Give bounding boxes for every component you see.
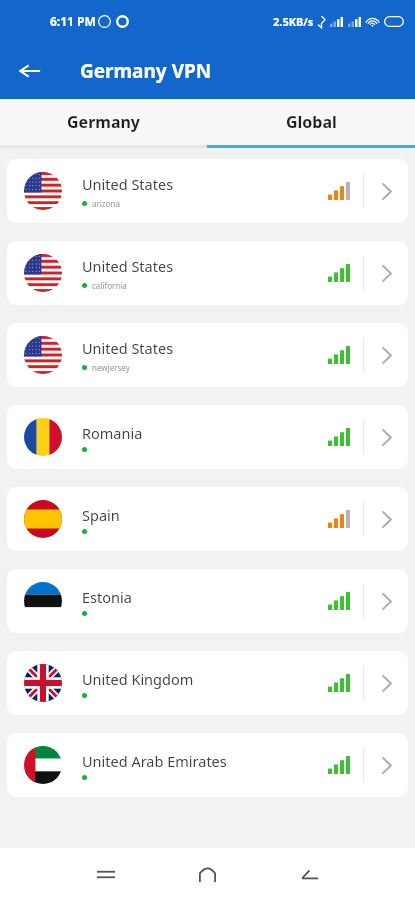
button[interactable]: Open United States xyxy=(364,241,408,305)
button[interactable]: Spain xyxy=(7,487,408,551)
button[interactable]: United States xyxy=(7,241,408,305)
staticText: newjersey xyxy=(92,362,130,373)
staticText: United States xyxy=(82,256,174,276)
staticText: United Kingdom xyxy=(82,669,194,689)
staticText: Spain xyxy=(82,505,120,525)
button[interactable]: Open Romania xyxy=(364,405,408,469)
staticText: 6:11 PM xyxy=(50,13,96,29)
staticText: 2.5KB/s xyxy=(273,14,314,29)
button[interactable]: Open United Kingdom xyxy=(364,651,408,715)
button[interactable]: Back xyxy=(258,848,360,900)
button[interactable]: Germany xyxy=(0,99,207,145)
staticText: Global xyxy=(286,111,337,133)
button[interactable]: Global xyxy=(207,99,415,145)
button[interactable]: Back xyxy=(8,49,52,93)
staticText: United States xyxy=(82,174,174,194)
button[interactable]: Estonia xyxy=(7,569,408,633)
button[interactable]: Open United States xyxy=(364,323,408,387)
staticText: Germany VPN xyxy=(80,58,212,84)
staticText: Romania xyxy=(82,423,143,443)
button[interactable]: Home xyxy=(156,848,258,900)
button[interactable]: Open United Arab Emirates xyxy=(364,733,408,797)
button[interactable]: Open United States xyxy=(364,159,408,223)
button[interactable]: Open Estonia xyxy=(364,569,408,633)
button[interactable]: United Kingdom xyxy=(7,651,408,715)
button[interactable]: Recents xyxy=(55,848,156,900)
button[interactable]: United States xyxy=(7,159,408,223)
staticText: california xyxy=(92,280,127,291)
button[interactable]: United Arab Emirates xyxy=(7,733,408,797)
button[interactable]: Open Spain xyxy=(364,487,408,551)
button[interactable]: United States xyxy=(7,323,408,387)
staticText: Estonia xyxy=(82,587,132,607)
staticText: United Arab Emirates xyxy=(82,751,227,771)
staticText: Germany xyxy=(67,111,141,133)
button[interactable]: Romania xyxy=(7,405,408,469)
staticText: United States xyxy=(82,338,174,358)
staticText: arizona xyxy=(92,198,120,209)
